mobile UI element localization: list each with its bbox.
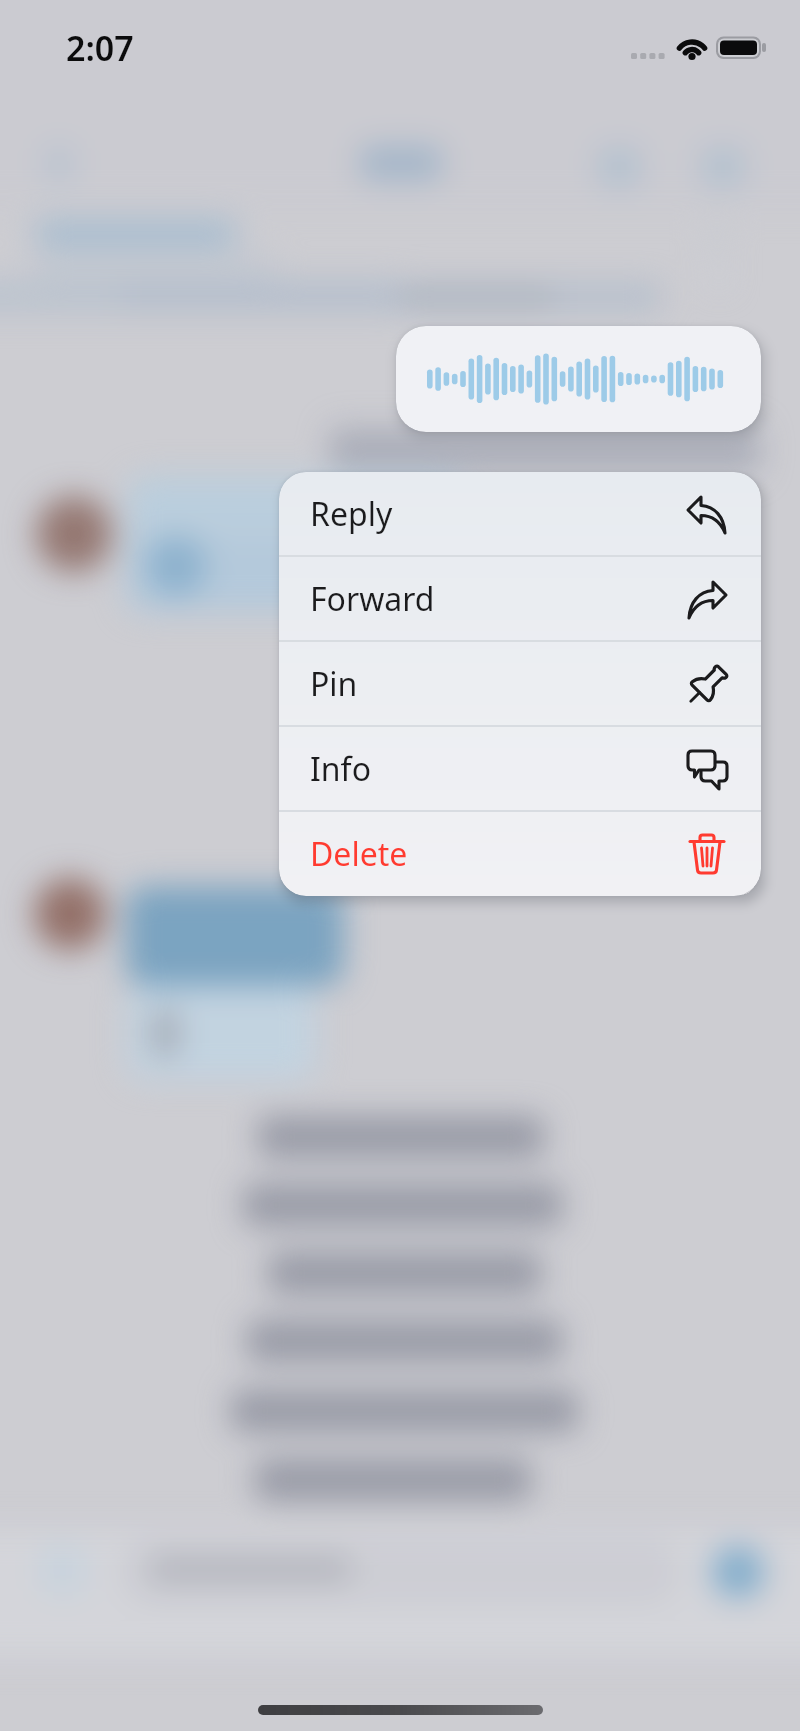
button[interactable]: Voice message	[396, 326, 761, 432]
button[interactable]: Pin	[279, 642, 761, 725]
staticText: Delete	[310, 832, 681, 876]
button[interactable]: Dismiss menu	[0, 0, 800, 1731]
button[interactable]: Info	[279, 727, 761, 810]
staticText: Forward	[310, 577, 681, 621]
staticText: Info	[310, 747, 681, 791]
button[interactable]: Reply	[279, 472, 761, 555]
staticText: Reply	[310, 492, 681, 536]
button[interactable]: Forward	[279, 557, 761, 640]
staticText: 2:07	[66, 25, 134, 71]
staticText: Pin	[310, 662, 681, 706]
button[interactable]: Delete	[279, 812, 761, 895]
